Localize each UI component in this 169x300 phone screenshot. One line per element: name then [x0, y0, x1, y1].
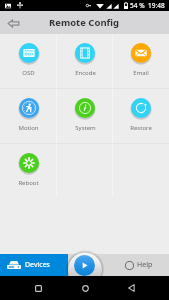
button[interactable]: Help [68, 254, 169, 276]
button[interactable]: Motion [0, 89, 57, 143]
staticText: Restore [130, 124, 152, 132]
staticText: Devices [25, 260, 50, 270]
button[interactable]: Home [76, 279, 94, 297]
button[interactable]: Restore [113, 89, 169, 143]
staticText: System [75, 124, 96, 132]
button[interactable]: Reboot [0, 144, 57, 196]
staticText: 19:48 [148, 1, 165, 10]
staticText: Remote Config [49, 16, 120, 29]
button[interactable]: Play [74, 255, 95, 276]
button[interactable]: Encode [57, 34, 113, 88]
button[interactable]: System [57, 89, 113, 143]
button[interactable]: OSD [0, 34, 57, 88]
button[interactable]: Back [122, 279, 140, 297]
staticText: OSD [22, 69, 35, 77]
staticText: Motion [18, 124, 39, 132]
staticText: 54 % [130, 1, 145, 10]
button[interactable]: Devices [0, 254, 68, 276]
button[interactable]: Back [4, 14, 22, 32]
staticText: Reboot [18, 179, 39, 187]
button[interactable]: Email [113, 34, 169, 88]
button[interactable]: Recents [29, 279, 47, 297]
staticText: Help [137, 260, 153, 270]
staticText: Encode [75, 69, 96, 77]
staticText: Email [133, 69, 149, 77]
